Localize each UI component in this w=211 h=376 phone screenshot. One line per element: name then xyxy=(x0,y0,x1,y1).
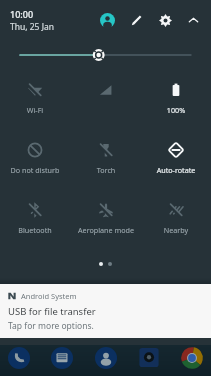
button[interactable]: Settings xyxy=(154,9,176,31)
button[interactable]: Do not disturb xyxy=(0,134,70,194)
button[interactable]: Contacts xyxy=(93,345,119,371)
button[interactable]: Edit tiles xyxy=(125,9,147,31)
staticText: Tap for more options. xyxy=(8,320,94,332)
button[interactable]: Android System xyxy=(0,284,211,338)
button[interactable]: Camera xyxy=(136,345,162,371)
button[interactable]: Mobile data xyxy=(71,74,141,134)
staticText: Android System xyxy=(21,291,77,301)
staticText: 100% xyxy=(141,105,211,115)
staticText: Thu, 25 Jan xyxy=(10,21,54,33)
button[interactable]: Chrome xyxy=(179,345,205,371)
button[interactable]: Aeroplane mode xyxy=(71,194,141,254)
staticText: Torch xyxy=(71,165,141,175)
staticText: Do not disturb xyxy=(0,165,70,175)
button[interactable]: Torch xyxy=(71,134,141,194)
button[interactable]: Bluetooth xyxy=(0,194,70,254)
button[interactable]: Messages xyxy=(49,345,75,371)
staticText: Bluetooth xyxy=(0,225,70,235)
staticText: Aeroplane mode xyxy=(71,225,141,235)
button[interactable]: Nearby xyxy=(141,194,211,254)
staticText: USB for file transfer xyxy=(8,305,96,318)
staticText: 10:00 xyxy=(10,8,34,20)
staticText: Wi-Fi xyxy=(0,105,70,115)
button[interactable]: Brightness xyxy=(20,44,191,66)
button[interactable]: Phone xyxy=(6,345,32,371)
button[interactable]: User account xyxy=(96,9,118,31)
button[interactable]: Auto-rotate xyxy=(141,134,211,194)
button[interactable]: Wi-Fi xyxy=(0,74,70,134)
button[interactable]: Collapse xyxy=(183,10,203,30)
staticText: Nearby xyxy=(141,225,211,235)
button[interactable]: Battery xyxy=(141,74,211,134)
staticText: Auto-rotate xyxy=(141,165,211,175)
